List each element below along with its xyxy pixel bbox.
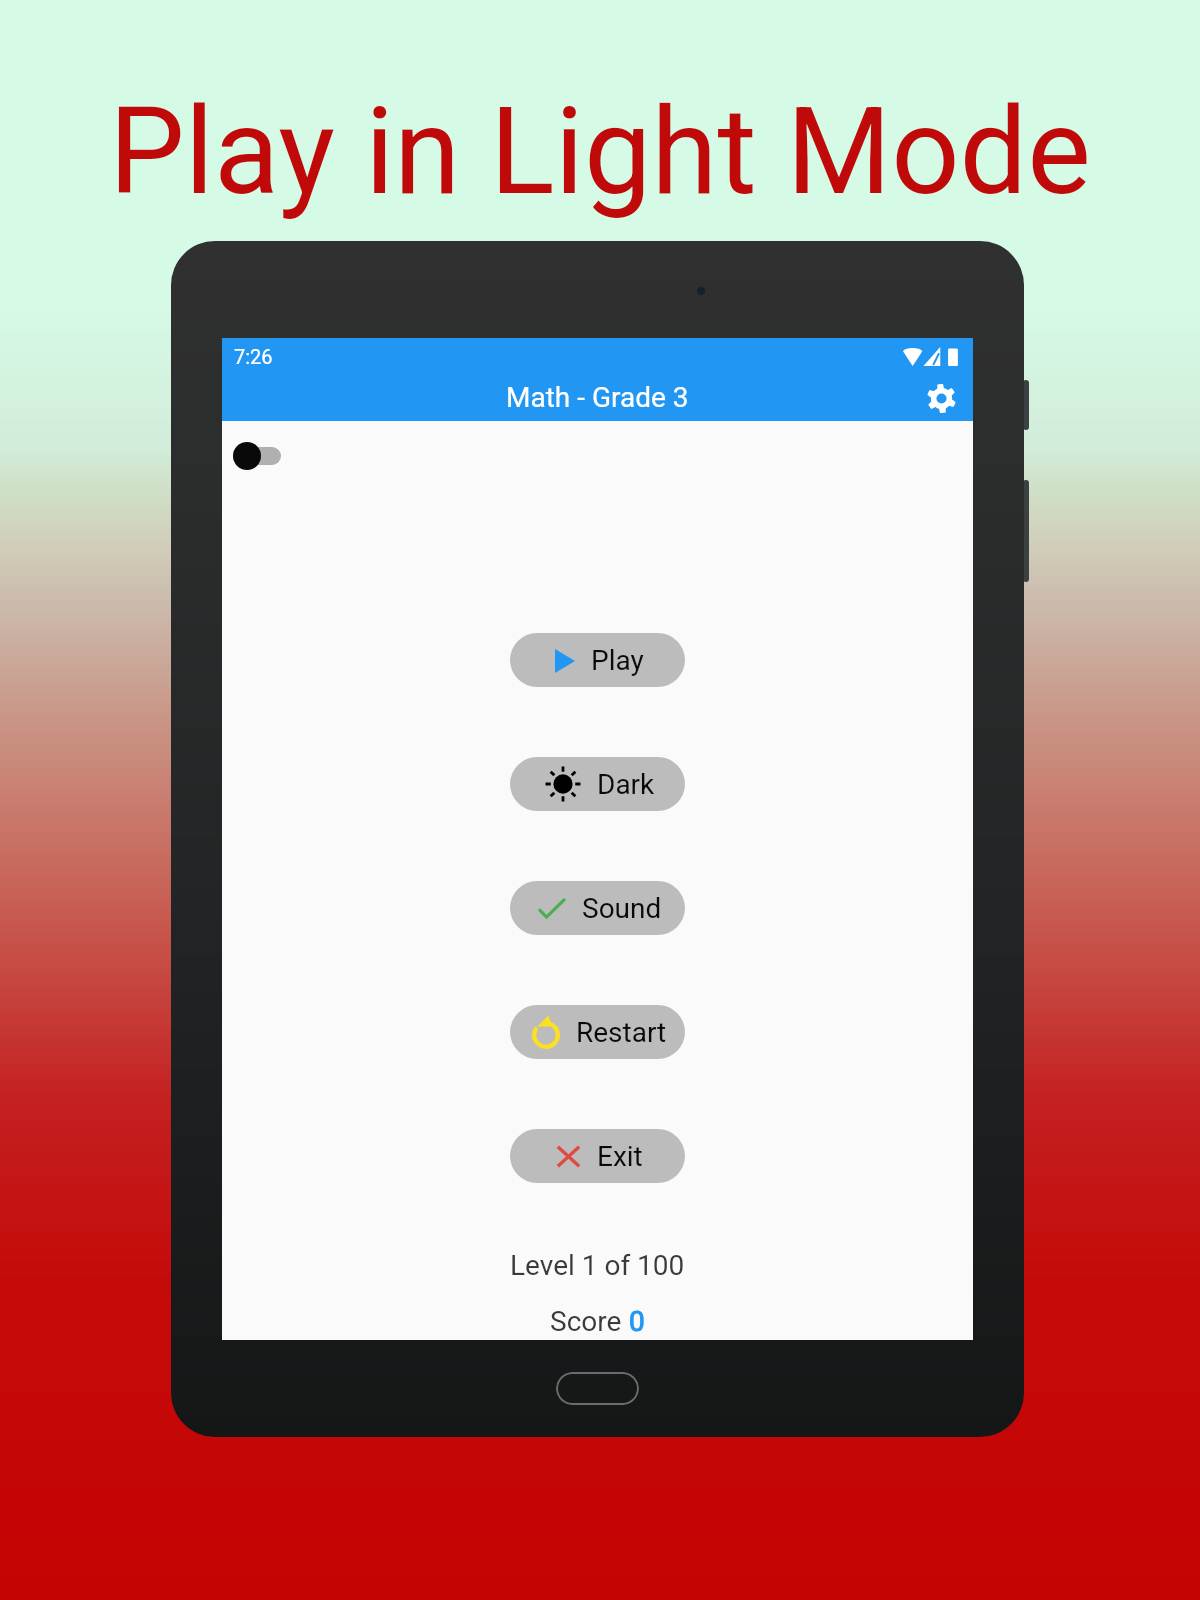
- staticText: Level 1 of 100: [510, 1249, 685, 1282]
- button[interactable]: Restart: [510, 1005, 685, 1059]
- staticText: Score: [550, 1305, 629, 1338]
- button[interactable]: Sound: [510, 881, 685, 935]
- staticText: 0: [629, 1305, 645, 1338]
- staticText: Play in Light Mode: [109, 82, 1091, 223]
- staticText: Dark: [597, 768, 655, 801]
- button[interactable]: Dark mode toggle: [230, 437, 294, 475]
- staticText: Math - Grade 3: [506, 381, 689, 414]
- button[interactable]: Dark: [510, 757, 685, 811]
- button[interactable]: Play: [510, 633, 685, 687]
- staticText: 7:26: [234, 345, 273, 368]
- staticText: Sound: [582, 892, 662, 925]
- staticText: Restart: [576, 1016, 667, 1049]
- button[interactable]: Settings: [921, 378, 961, 418]
- staticText: Play: [591, 644, 644, 677]
- staticText: Exit: [597, 1140, 643, 1173]
- button[interactable]: Exit: [510, 1129, 685, 1183]
